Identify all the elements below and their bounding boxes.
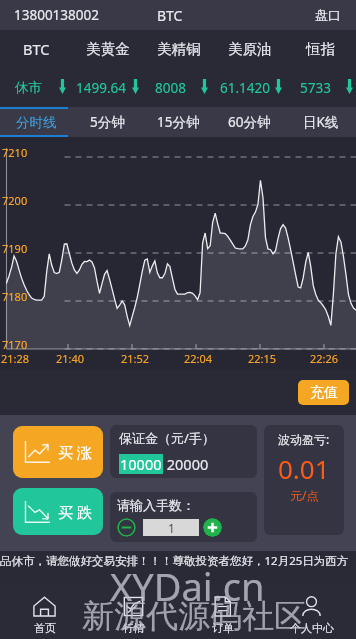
staticText: 美原油 xyxy=(228,40,272,58)
staticText: BTC xyxy=(23,39,50,59)
staticText: 日K线 xyxy=(303,113,339,131)
button[interactable]: 日K线 xyxy=(285,107,356,137)
staticText: 新源代源码社区 xyxy=(82,596,306,636)
staticText: 22:04 xyxy=(184,351,213,366)
button[interactable]: 分时线 xyxy=(0,107,72,137)
staticText: 22:15 xyxy=(248,351,277,366)
staticText: 波动盈亏: xyxy=(278,431,330,447)
staticText: 61.1420 xyxy=(220,79,270,97)
staticText: 分时线 xyxy=(16,114,57,131)
staticText: 首页 xyxy=(34,621,56,635)
staticText: 1499.64 xyxy=(76,79,126,97)
staticText: 盘口 xyxy=(315,7,341,23)
staticText: 21:28 xyxy=(1,351,30,366)
staticText: 0.01 xyxy=(278,451,330,486)
button[interactable]: 保证金（元/手） xyxy=(110,425,257,478)
staticText: XYDai.cn xyxy=(110,560,265,612)
staticText: 5分钟 xyxy=(90,113,125,131)
button[interactable]: 盘口 xyxy=(299,3,356,27)
button[interactable]: 订单 xyxy=(178,585,267,639)
button[interactable]: 行情 xyxy=(89,585,178,639)
staticText: 充值 xyxy=(310,384,338,402)
button[interactable]: Increase lots xyxy=(203,518,222,537)
staticText: BTC xyxy=(157,6,183,25)
staticText: 20000 xyxy=(163,454,209,474)
staticText: 13800138002 xyxy=(14,6,99,24)
staticText: 个人中心 xyxy=(290,621,334,635)
staticText: 1 xyxy=(168,520,175,536)
staticText: 7200 xyxy=(2,193,28,208)
staticText: 订单 xyxy=(212,621,234,635)
staticText: 7180 xyxy=(2,289,28,304)
button[interactable]: BTC xyxy=(0,30,72,68)
button[interactable]: Decrease lots xyxy=(117,518,136,537)
staticText: 5733 xyxy=(300,79,331,97)
button[interactable]: 个人中心 xyxy=(267,585,356,639)
staticText: 请输入手数： xyxy=(117,497,195,513)
staticText: 7210 xyxy=(2,145,28,160)
staticText: 8008 xyxy=(155,79,186,97)
button[interactable]: 美精铜 xyxy=(143,30,214,68)
staticText: 7190 xyxy=(2,241,28,256)
staticText: 7170 xyxy=(2,337,28,352)
staticText: 元/点 xyxy=(290,487,319,503)
button[interactable]: 60分钟 xyxy=(214,107,285,137)
staticText: 21:40 xyxy=(56,351,85,366)
button[interactable]: 美原油 xyxy=(214,30,285,68)
button[interactable]: 买 跌 xyxy=(13,488,103,535)
staticText: 恒指 xyxy=(306,40,335,58)
staticText: 22:26 xyxy=(310,351,339,366)
button[interactable]: 15分钟 xyxy=(143,107,214,137)
button[interactable]: 5分钟 xyxy=(72,107,143,137)
staticText: 60分钟 xyxy=(228,113,271,131)
staticText: 买 跌 xyxy=(58,502,92,522)
staticText: 行情 xyxy=(123,621,145,635)
staticText: 休市 xyxy=(15,79,42,96)
button[interactable]: 首页 xyxy=(0,585,89,639)
staticText: 保证金（元/手） xyxy=(119,429,215,447)
staticText: 买 涨 xyxy=(58,442,92,462)
staticText: 10000 xyxy=(120,454,162,474)
button[interactable]: 买 涨 xyxy=(13,426,103,478)
button[interactable]: 恒指 xyxy=(285,30,356,68)
button[interactable]: 充值 xyxy=(298,380,349,405)
staticText: 15分钟 xyxy=(157,113,200,131)
staticText: 美黄金 xyxy=(86,40,130,58)
staticText: 美精铜 xyxy=(157,40,201,58)
staticText: 品休市，请您做好交易安排！！！尊敬投资者您好，12月25日为西方 xyxy=(0,553,349,569)
staticText: 21:52 xyxy=(121,351,150,366)
button[interactable]: 美黄金 xyxy=(72,30,143,68)
